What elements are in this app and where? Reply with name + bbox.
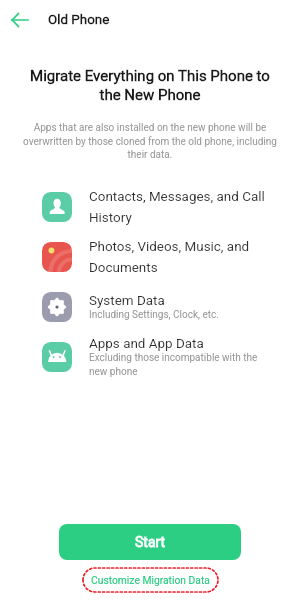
staticText: Customize Migration Data bbox=[91, 574, 210, 586]
button[interactable]: Photos, Videos, Music, and Documents bbox=[0, 232, 300, 282]
button[interactable]: Customize Migration Data bbox=[82, 567, 219, 593]
button[interactable]: Back bbox=[11, 11, 29, 29]
button[interactable]: Apps and App Data bbox=[0, 332, 300, 382]
staticText: Including Settings, Clock, etc. bbox=[89, 309, 219, 321]
staticText: Migrate Everything on This Phone to the … bbox=[26, 67, 274, 104]
staticText: Contacts, Messages, and Call History bbox=[89, 189, 272, 225]
button[interactable]: Start bbox=[59, 524, 241, 560]
staticText: System Data bbox=[89, 293, 165, 309]
staticText: Start bbox=[135, 534, 166, 550]
button[interactable]: System Data bbox=[0, 282, 300, 332]
staticText: Apps that are also installed on the new … bbox=[18, 122, 282, 160]
button[interactable]: Contacts, Messages, and Call History bbox=[0, 182, 300, 232]
staticText: Apps and App Data bbox=[89, 336, 204, 352]
staticText: Excluding those incompatible with the ne… bbox=[89, 352, 272, 378]
staticText: Photos, Videos, Music, and Documents bbox=[89, 239, 272, 275]
staticText: Old Phone bbox=[48, 12, 110, 28]
